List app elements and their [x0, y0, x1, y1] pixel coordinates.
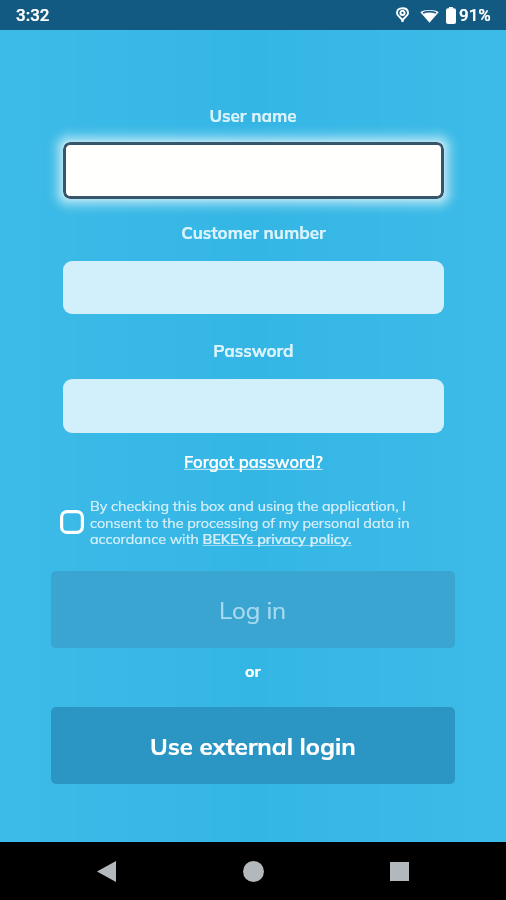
- staticText: By checking this box and using the appli…: [90, 497, 420, 548]
- button[interactable]: [63, 142, 444, 199]
- staticText: or: [245, 661, 261, 681]
- button[interactable]: Home: [217, 842, 289, 900]
- staticText: 3:32: [16, 5, 50, 25]
- staticText: Customer number: [181, 222, 326, 243]
- staticText: User name: [209, 105, 297, 126]
- staticText: Use external login: [150, 731, 356, 761]
- button[interactable]: [63, 261, 444, 314]
- button[interactable]: Log in: [51, 571, 455, 648]
- staticText: 91%: [459, 5, 491, 25]
- button[interactable]: [63, 379, 444, 433]
- button[interactable]: Use external login: [51, 707, 455, 784]
- button[interactable]: By checking this box and using the appli…: [60, 497, 420, 548]
- button[interactable]: Recent apps: [363, 842, 435, 900]
- staticText: Password: [213, 340, 294, 361]
- staticText: Log in: [219, 595, 287, 625]
- button[interactable]: Back: [70, 842, 142, 900]
- button[interactable]: Forgot password?: [184, 451, 323, 472]
